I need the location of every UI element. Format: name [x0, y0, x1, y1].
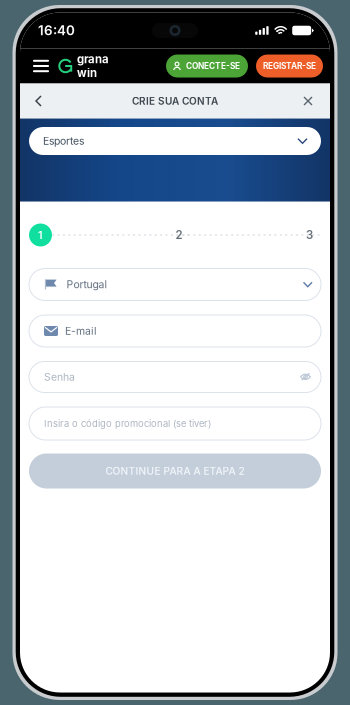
staticText: Senha — [44, 371, 75, 383]
staticText: 3 — [306, 228, 313, 242]
button[interactable]: Back — [26, 86, 52, 116]
button[interactable]: Menu — [28, 54, 54, 78]
staticText: CONTINUE PARA A ETAPA 2 — [105, 465, 244, 477]
staticText: Esportes — [43, 135, 84, 147]
staticText: grana — [77, 52, 109, 66]
staticText: 1 — [38, 228, 43, 241]
button[interactable]: REGISTAR-SE — [256, 54, 323, 77]
button[interactable]: CONECTE-SE — [166, 54, 248, 77]
staticText: CONECTE-SE — [186, 61, 240, 71]
button[interactable]: CONTINUE PARA A ETAPA 2 — [29, 453, 321, 488]
staticText: 16:40 — [38, 22, 75, 38]
button[interactable]: Close — [294, 87, 322, 115]
staticText: Insira o código promocional (se tiver) — [44, 418, 211, 429]
button[interactable]: grana win home — [58, 52, 109, 80]
staticText: CRIE SUA CONTA — [132, 95, 218, 107]
button[interactable]: Esportes — [29, 127, 321, 155]
staticText: REGISTAR-SE — [263, 61, 316, 71]
staticText: 2 — [175, 228, 182, 242]
staticText: Portugal — [66, 278, 107, 291]
staticText: win — [77, 66, 97, 80]
button[interactable]: Portugal — [29, 268, 321, 300]
staticText: E-mail — [65, 325, 97, 337]
